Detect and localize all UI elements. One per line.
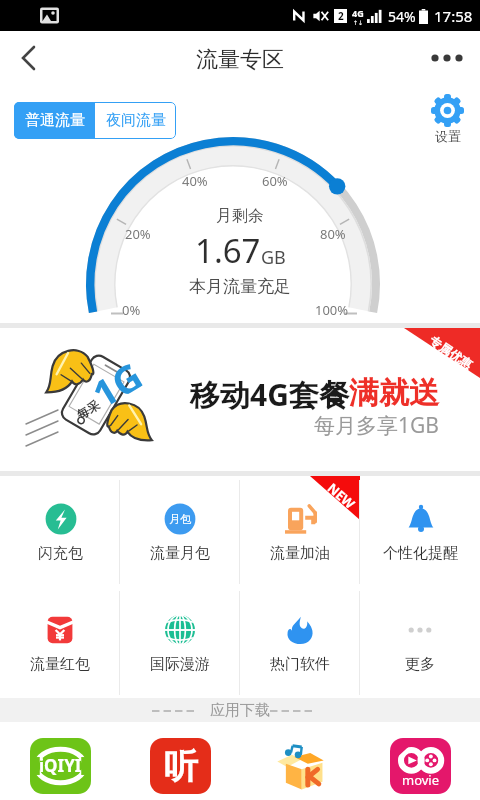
button[interactable]: 流量加油 <box>240 476 360 587</box>
button[interactable]: Ximalaya <box>120 722 240 800</box>
button[interactable]: 国际漫游 <box>120 587 240 698</box>
staticText: 80% <box>320 225 346 243</box>
button[interactable]: 普通流量 <box>14 102 95 139</box>
staticText: 热门软件 <box>270 655 330 674</box>
staticText: 40% <box>182 172 208 190</box>
button[interactable]: Movie <box>360 722 480 800</box>
button[interactable]: 热门软件 <box>240 587 360 698</box>
button[interactable]: 更多 <box>360 587 480 698</box>
staticText: 闪充包 <box>38 544 83 563</box>
staticText: 月包 <box>169 512 191 526</box>
staticText: 听 <box>164 745 198 788</box>
staticText: 更多 <box>405 655 435 674</box>
staticText: GB <box>261 245 286 270</box>
staticText: 专属优惠 <box>427 333 475 372</box>
staticText: 流量专区 <box>196 46 284 74</box>
staticText: 100% <box>315 301 349 319</box>
staticText: 60% <box>262 172 288 190</box>
staticText: 夜间流量 <box>106 111 166 130</box>
staticText: 本月流量充足 <box>189 276 291 297</box>
staticText: 4G <box>352 7 364 19</box>
staticText: 设置 <box>435 128 461 144</box>
staticText: 月剩余 <box>216 206 264 226</box>
staticText: 17:58 <box>434 6 473 26</box>
button[interactable]: 个性化提醒 <box>360 476 480 587</box>
staticText: 2 <box>338 9 344 23</box>
button[interactable]: More options <box>420 31 480 85</box>
staticText: 移动4G套餐 <box>190 374 349 415</box>
staticText: 应用下载 <box>210 701 270 720</box>
staticText: 每月多享1GB <box>314 411 439 440</box>
staticText: 国际漫游 <box>150 655 210 674</box>
staticText: 满就送 <box>349 374 439 412</box>
staticText: 流量月包 <box>150 544 210 563</box>
button[interactable]: 设置 <box>428 94 467 144</box>
staticText: 20% <box>125 225 151 243</box>
staticText: 0% <box>122 301 141 319</box>
staticText: 普通流量 <box>25 111 85 130</box>
button[interactable]: iQIYI <box>0 722 120 800</box>
staticText: 流量加油 <box>270 544 330 563</box>
button[interactable]: 夜间流量 <box>95 102 176 139</box>
staticText: 1.67 <box>195 228 261 273</box>
button[interactable]: 流量红包 <box>0 587 120 698</box>
staticText: iQIYI <box>39 754 82 777</box>
button[interactable]: 月包 <box>120 476 240 587</box>
button[interactable]: Kugou Music <box>240 722 360 800</box>
staticText: 54% <box>388 7 416 26</box>
staticText: ↑↓ <box>353 19 364 26</box>
button[interactable]: 闪充包 <box>0 476 120 587</box>
staticText: 个性化提醒 <box>383 544 458 563</box>
staticText: movie <box>402 771 440 789</box>
button[interactable]: Back <box>0 31 54 85</box>
staticText: 流量红包 <box>30 655 90 674</box>
staticText: NEW <box>324 479 359 513</box>
staticText: 每采 <box>74 397 102 422</box>
staticText: 1G <box>82 349 146 409</box>
